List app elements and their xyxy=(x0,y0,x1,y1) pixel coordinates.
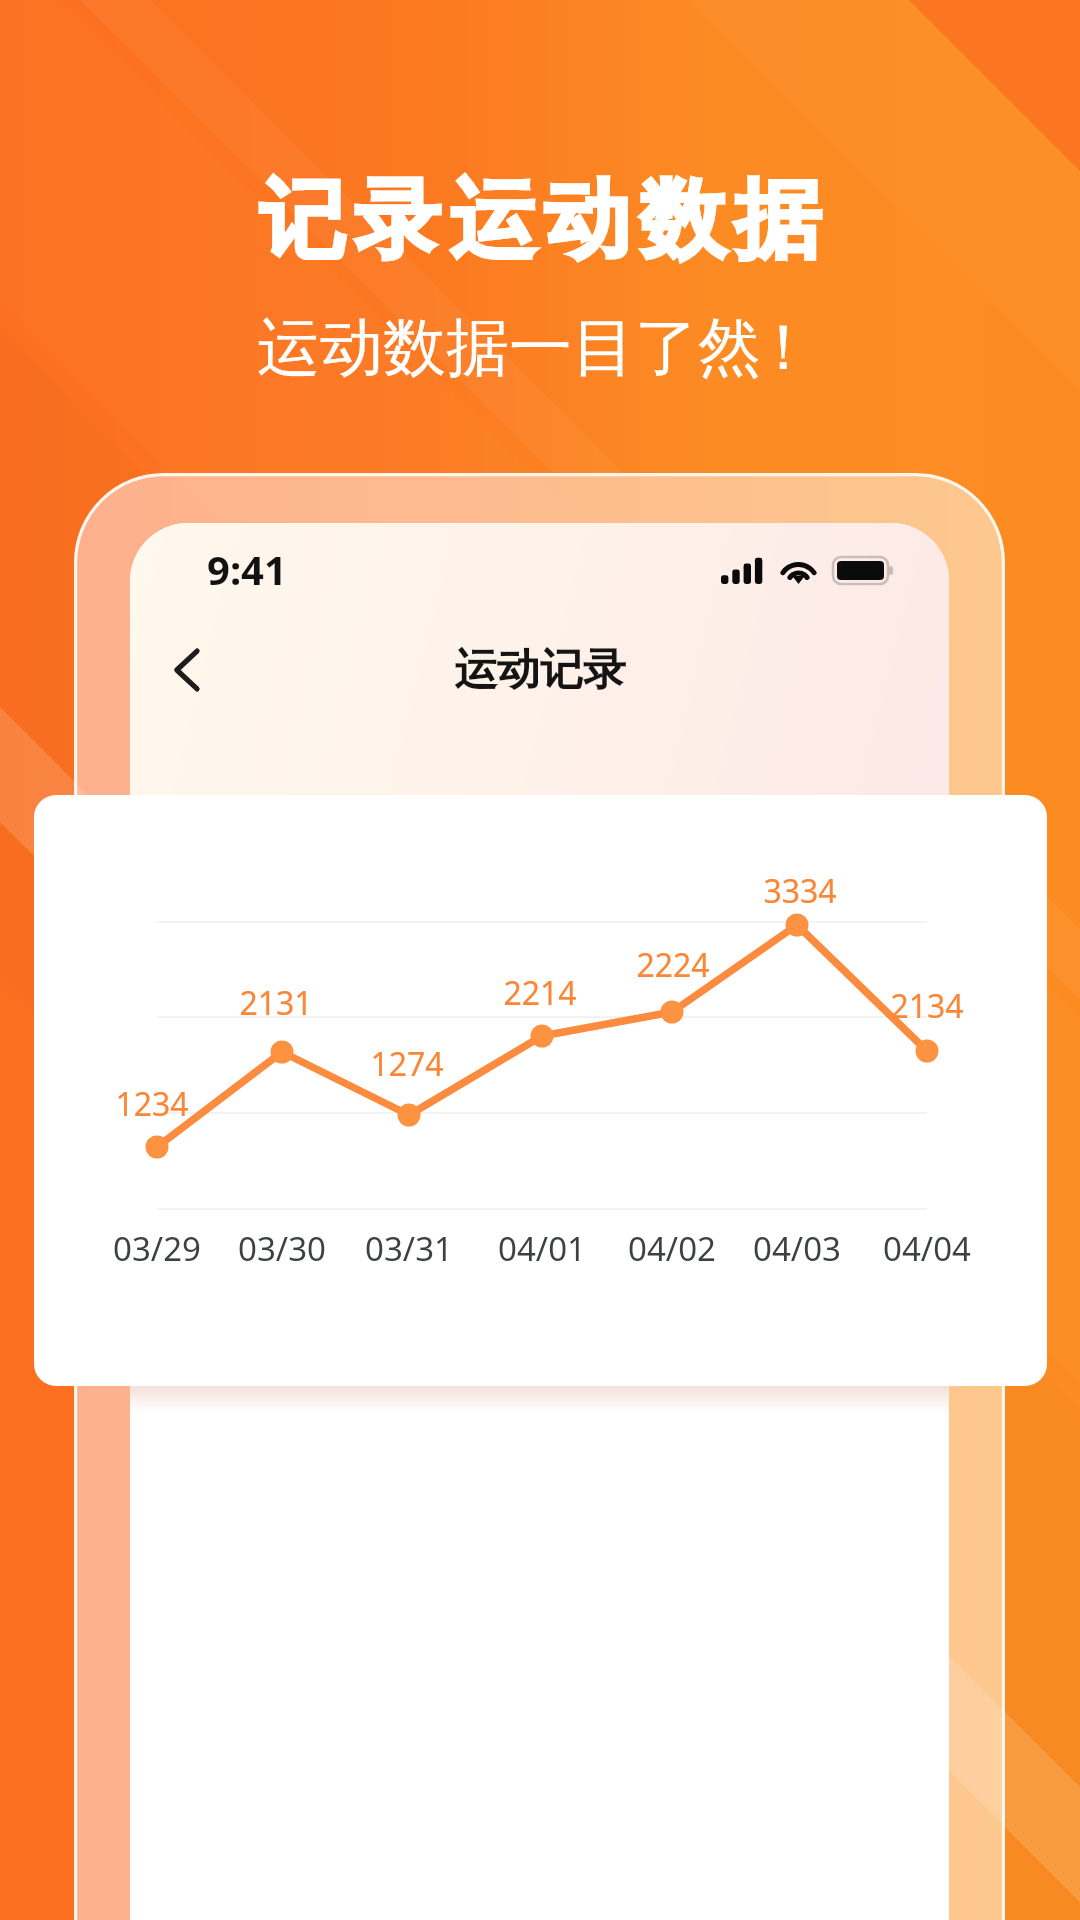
staticText: 03/29 xyxy=(87,1226,227,1271)
staticText: 04/01 xyxy=(472,1226,612,1271)
staticText: 9:41 xyxy=(207,542,287,596)
staticText: 记录运动数据 xyxy=(255,166,825,274)
staticText: 04/03 xyxy=(727,1226,867,1271)
staticText: 04/04 xyxy=(857,1226,997,1271)
staticText: 3334 xyxy=(740,869,860,913)
staticText: 1274 xyxy=(347,1042,467,1086)
staticText: 2214 xyxy=(480,971,600,1015)
staticText: 2224 xyxy=(613,943,733,987)
staticText: 04/02 xyxy=(602,1226,742,1271)
staticText: 1234 xyxy=(92,1082,212,1126)
staticText: 03/30 xyxy=(212,1226,352,1271)
button[interactable]: Back xyxy=(139,625,229,715)
staticText: 运动记录 xyxy=(454,643,626,697)
staticText: ！ xyxy=(752,308,815,387)
staticText: 2134 xyxy=(867,984,987,1028)
staticText: 2131 xyxy=(216,981,336,1025)
staticText: 运动数据一目了然 xyxy=(257,308,761,387)
staticText: 03/31 xyxy=(339,1226,479,1271)
